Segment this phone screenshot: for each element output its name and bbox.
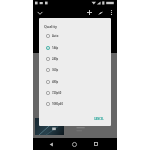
button[interactable]: 360p: [39, 64, 111, 75]
staticText: Quality: [44, 24, 58, 29]
button[interactable]: CANCEL: [93, 116, 105, 121]
button[interactable]: Back: [46, 139, 56, 149]
button[interactable]: Auto: [39, 30, 111, 41]
staticText: 144p: [52, 46, 59, 50]
button[interactable]: Home: [69, 139, 79, 149]
staticText: 360p: [52, 68, 59, 72]
button[interactable]: 240p: [39, 53, 111, 64]
button[interactable]: Recent apps: [91, 139, 101, 149]
button[interactable]: More options: [106, 7, 117, 18]
staticText: 480p: [52, 80, 59, 84]
button[interactable]: Add to playlist: [84, 7, 95, 18]
button[interactable]: 720p60: [39, 87, 111, 98]
button[interactable]: 1080p60: [39, 98, 111, 109]
staticText: 1080p60: [52, 102, 63, 106]
staticText: CANCEL: [94, 117, 104, 120]
button[interactable]: 480p: [39, 76, 111, 87]
button[interactable]: Share: [95, 7, 106, 18]
button[interactable]: [33, 53, 117, 138]
button[interactable]: 144p: [39, 42, 111, 53]
staticText: Auto: [52, 34, 59, 38]
button[interactable]: Collapse player: [34, 7, 45, 18]
staticText: 720p60: [52, 91, 62, 95]
staticText: 240p: [52, 57, 59, 61]
